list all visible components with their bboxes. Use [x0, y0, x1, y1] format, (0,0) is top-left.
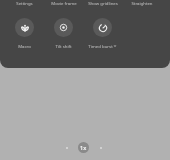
- button[interactable]: Show gridlines: [83, 0, 122, 6]
- staticText: Straighten: [131, 0, 153, 6]
- button[interactable]: Movie frame: [44, 0, 83, 6]
- button[interactable]: Straighten: [122, 0, 161, 6]
- staticText: Show gridlines: [88, 0, 118, 6]
- staticText: 1x: [80, 144, 87, 151]
- staticText: Timed burst: [88, 43, 113, 49]
- staticText: Movie frame: [51, 0, 77, 6]
- staticText: Macro: [18, 43, 31, 49]
- button[interactable]: Tilt shift: [44, 18, 83, 49]
- staticText: Tilt shift: [55, 43, 72, 49]
- staticText: Settings: [16, 0, 33, 6]
- button[interactable]: Timed burst: [83, 18, 122, 49]
- button[interactable]: Settings: [5, 0, 44, 6]
- button[interactable]: 1x: [78, 142, 89, 153]
- button[interactable]: Macro: [5, 18, 44, 49]
